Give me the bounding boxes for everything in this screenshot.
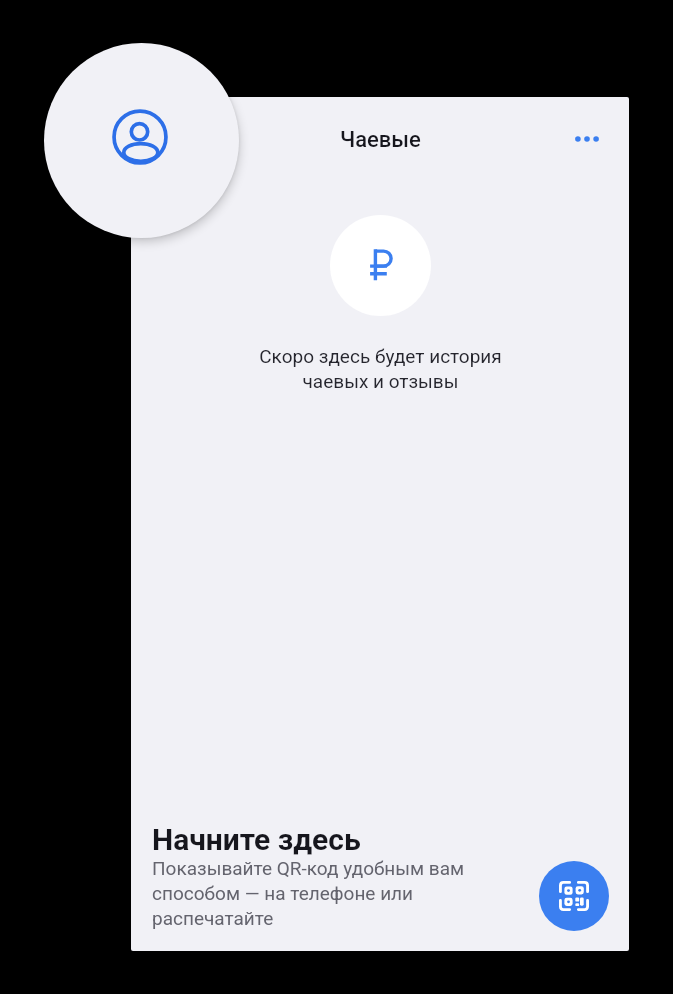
staticText: Чаевые (340, 127, 421, 153)
staticText: Начните здесь (152, 822, 361, 857)
button[interactable]: More options (565, 117, 609, 161)
button[interactable]: Show QR code (539, 861, 609, 931)
staticText: Скоро здесь будет история чаевых и отзыв… (259, 345, 502, 393)
staticText: Показывайте QR-код удобным вам способом … (152, 857, 472, 930)
button[interactable]: Profile (44, 43, 239, 238)
